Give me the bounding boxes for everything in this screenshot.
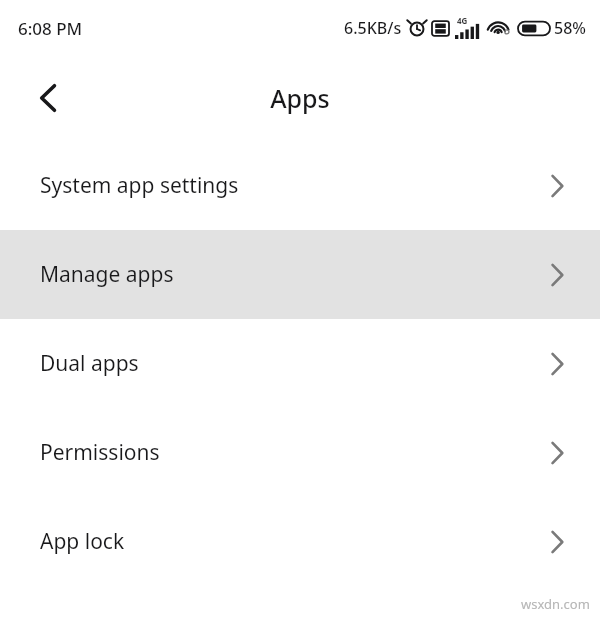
staticText: Manage apps xyxy=(40,260,174,289)
staticText: 58% xyxy=(554,17,586,39)
button[interactable]: Back xyxy=(26,76,70,120)
button[interactable]: Manage apps xyxy=(0,230,600,319)
staticText: Apps xyxy=(0,81,600,115)
staticText: System app settings xyxy=(40,171,239,200)
staticText: Permissions xyxy=(40,438,160,467)
staticText: 4G xyxy=(457,15,468,26)
button[interactable]: Dual apps xyxy=(0,319,600,408)
staticText: wsxdn.com xyxy=(521,595,590,613)
staticText: Dual apps xyxy=(40,349,139,378)
staticText: 6:08 PM xyxy=(18,17,83,40)
button[interactable]: Permissions xyxy=(0,408,600,497)
button[interactable]: System app settings xyxy=(0,141,600,230)
staticText: App lock xyxy=(40,527,125,556)
button[interactable]: App lock xyxy=(0,497,600,586)
staticText: 6.5KB/s xyxy=(344,17,402,39)
